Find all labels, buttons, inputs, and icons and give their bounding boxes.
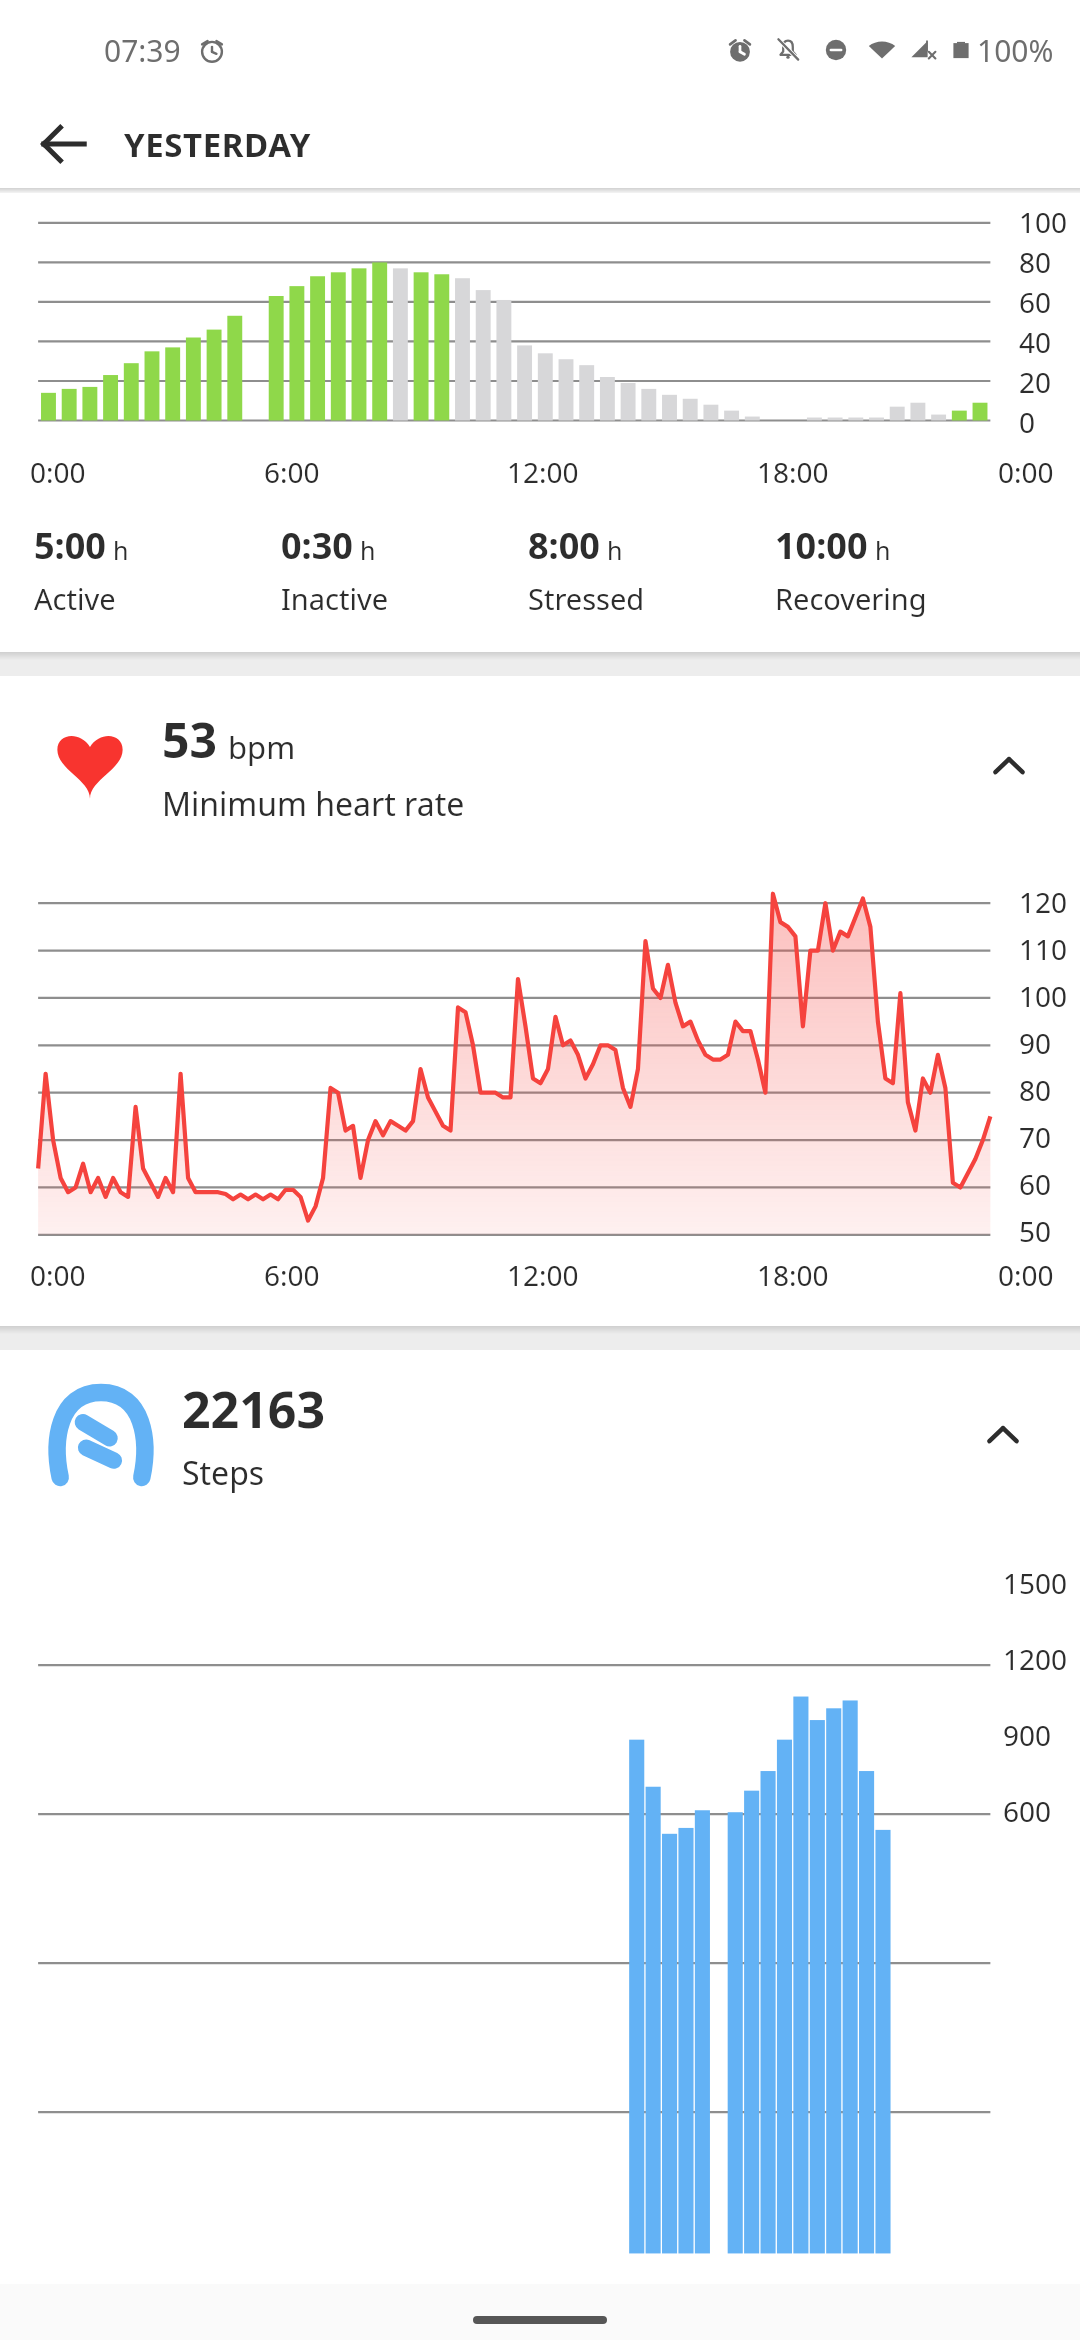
staticText: 600 <box>1003 1792 1052 1830</box>
staticText: 50 <box>1019 1212 1052 1250</box>
staticText: 10:00 <box>775 521 868 570</box>
staticText: 110 <box>1019 930 1068 968</box>
staticText: 60 <box>1019 1165 1052 1203</box>
staticText: 1500 <box>1003 1564 1068 1602</box>
staticText: 100% <box>977 30 1054 71</box>
staticText: Recovering <box>775 579 927 618</box>
staticText: Minimum heart rate <box>162 782 465 826</box>
button[interactable]: Collapse heart rate <box>974 731 1044 801</box>
staticText: 8:00 <box>528 521 600 570</box>
staticText: YESTERDAY <box>124 122 311 167</box>
staticText: 80 <box>1019 1071 1052 1109</box>
staticText: Steps <box>182 1451 265 1495</box>
staticText: h <box>607 533 623 567</box>
staticText: 18:00 <box>757 453 829 491</box>
staticText: 1200 <box>1003 1640 1068 1678</box>
staticText: 0:30 <box>281 521 353 570</box>
button[interactable]: 53 <box>0 676 1080 856</box>
staticText: h <box>875 533 891 567</box>
staticText: Inactive <box>281 579 388 618</box>
staticText: Stressed <box>528 579 645 618</box>
staticText: 0 <box>1019 403 1036 441</box>
staticText: 53 <box>162 707 217 772</box>
staticText: 70 <box>1019 1118 1052 1156</box>
button[interactable]: Collapse steps <box>968 1400 1038 1470</box>
staticText: 40 <box>1019 323 1052 361</box>
staticText: 18:00 <box>757 1256 829 1294</box>
staticText: 900 <box>1003 1716 1052 1754</box>
staticText: 6:00 <box>264 1256 320 1294</box>
staticText: 0:00 <box>998 453 1054 491</box>
staticText: 80 <box>1019 243 1052 281</box>
staticText: 0:00 <box>30 1256 86 1294</box>
staticText: 60 <box>1019 283 1052 321</box>
staticText: 20 <box>1019 363 1052 401</box>
staticText: 6:00 <box>264 453 320 491</box>
staticText: h <box>360 533 376 567</box>
staticText: 0:00 <box>30 453 86 491</box>
staticText: 12:00 <box>507 453 579 491</box>
staticText: 22163 <box>182 1375 325 1443</box>
staticText: 90 <box>1019 1024 1052 1062</box>
staticText: bpm <box>228 726 296 768</box>
staticText: 12:00 <box>507 1256 579 1294</box>
staticText: 120 <box>1019 883 1068 921</box>
staticText: 07:39 <box>104 30 181 71</box>
staticText: h <box>113 533 129 567</box>
staticText: Active <box>34 579 116 618</box>
button[interactable]: 22163 <box>0 1350 1080 1520</box>
button[interactable]: Back <box>26 106 102 182</box>
staticText: 0:00 <box>998 1256 1054 1294</box>
staticText: 100 <box>1019 977 1068 1015</box>
staticText: 5:00 <box>34 521 106 570</box>
staticText: 100 <box>1019 203 1068 241</box>
